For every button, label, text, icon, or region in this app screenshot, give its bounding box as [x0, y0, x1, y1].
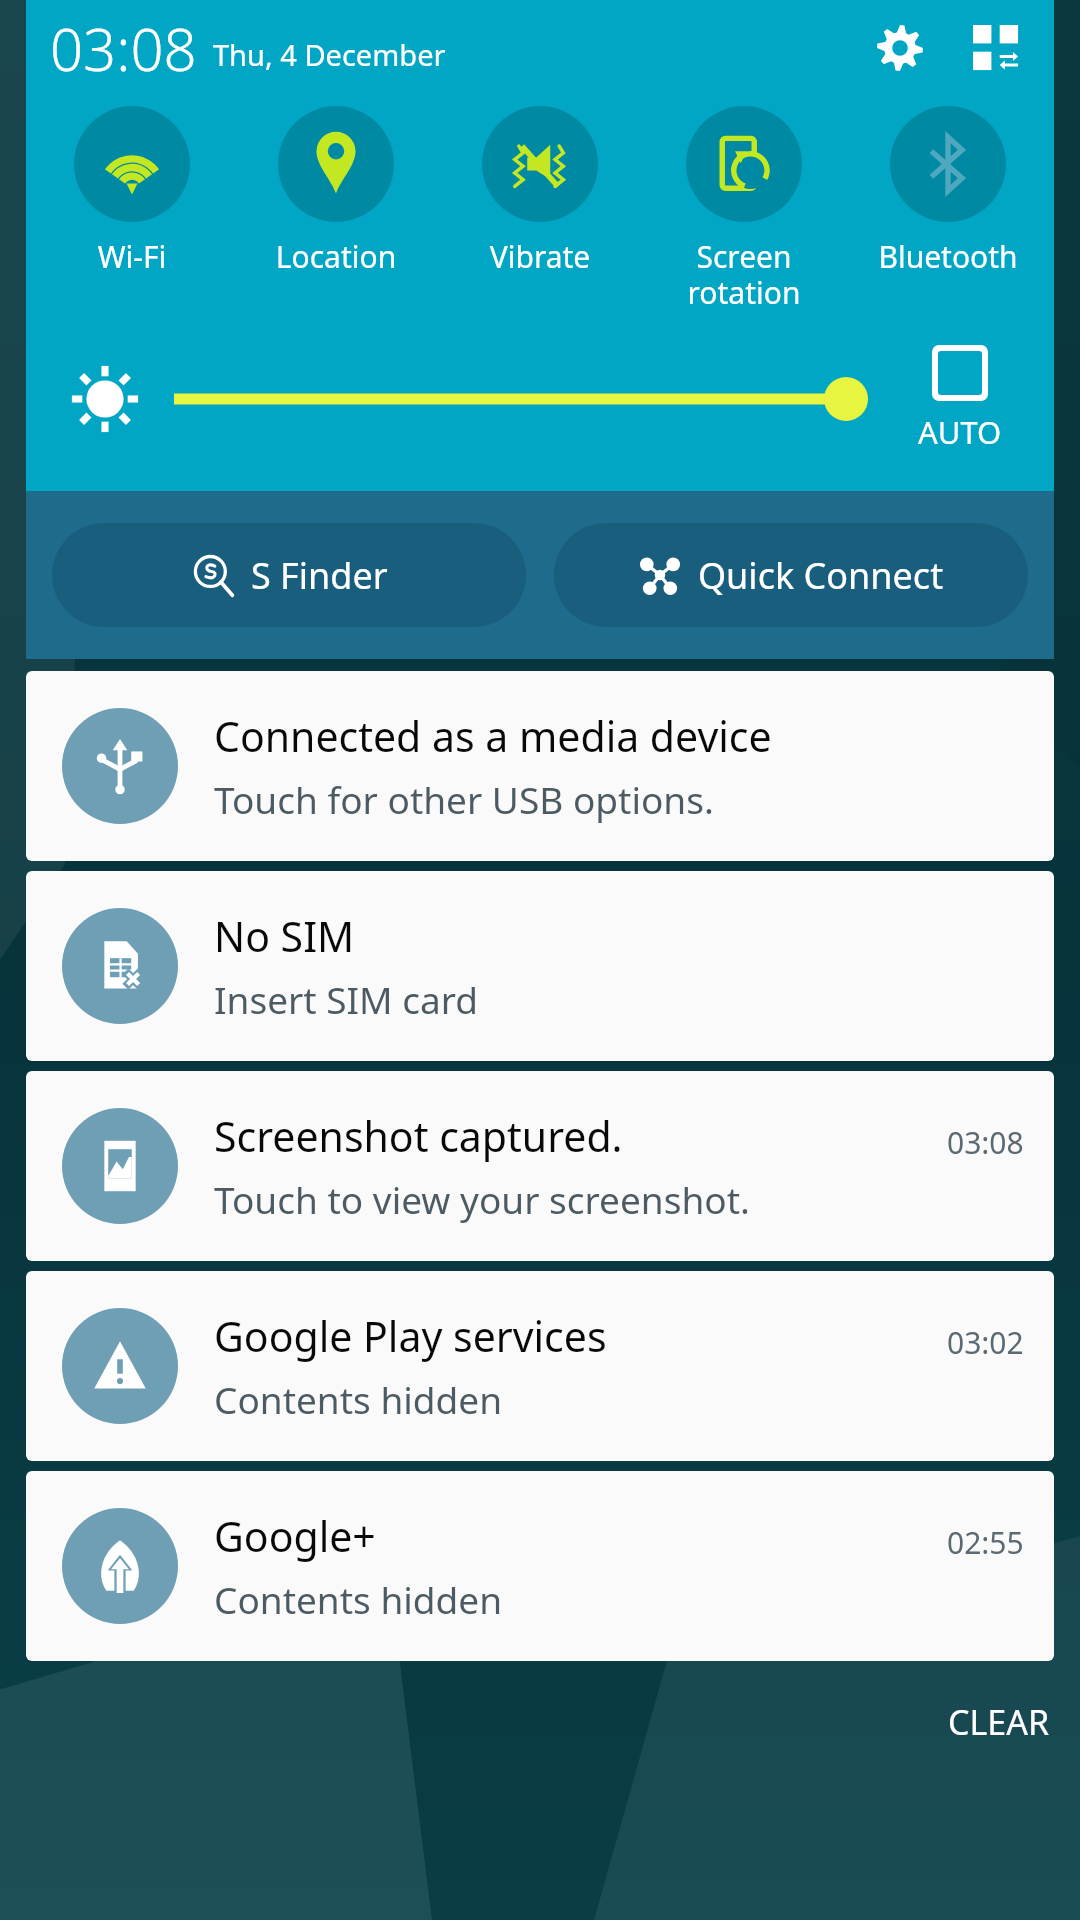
button[interactable]: Connected as a media device [26, 671, 1054, 861]
button[interactable]: No SIM [26, 871, 1054, 1061]
button[interactable]: Screen rotation [642, 102, 846, 317]
staticText: Thu, 4 December [213, 35, 446, 74]
staticText: Bluetooth [846, 236, 1050, 277]
staticText: Google Play services [214, 1308, 607, 1364]
staticText: 03:08 [947, 1122, 1024, 1163]
button[interactable]: Screenshot captured. [26, 1071, 1054, 1261]
button[interactable]: Quick Connect [554, 523, 1028, 627]
button[interactable]: CLEAR [918, 1689, 1080, 1755]
button[interactable]: Bluetooth [846, 102, 1050, 281]
button[interactable]: Edit quick settings [960, 12, 1032, 84]
staticText: Contents hidden [214, 1374, 503, 1424]
staticText: 03:08 [50, 9, 197, 88]
button[interactable] [174, 364, 864, 434]
staticText: Quick Connect [698, 551, 944, 600]
staticText: S Finder [251, 551, 388, 600]
button[interactable]: S Finder [52, 523, 526, 627]
staticText: Connected as a media device [214, 708, 772, 764]
button[interactable]: AUTO [890, 345, 1030, 453]
button[interactable]: Google Play services [26, 1271, 1054, 1461]
button[interactable]: Wi-Fi [30, 102, 234, 281]
staticText: Touch for other USB options. [214, 774, 714, 824]
staticText: Vibrate [438, 236, 642, 277]
button[interactable]: Google+ [26, 1471, 1054, 1661]
staticText: Screenshot captured. [214, 1108, 623, 1164]
staticText: No SIM [214, 908, 355, 964]
staticText: Contents hidden [214, 1574, 503, 1624]
staticText: Google+ [214, 1508, 376, 1564]
staticText: Insert SIM card [214, 974, 479, 1024]
staticText: CLEAR [948, 1699, 1050, 1745]
staticText: 03:02 [947, 1322, 1024, 1363]
staticText: Screen rotation [642, 236, 846, 313]
staticText: AUTO [918, 411, 1002, 453]
staticText: Location [234, 236, 438, 277]
button[interactable]: Settings [864, 12, 936, 84]
staticText: 02:55 [947, 1522, 1024, 1563]
button[interactable]: Location [234, 102, 438, 281]
staticText: Touch to view your screenshot. [214, 1174, 750, 1224]
button[interactable]: Vibrate [438, 102, 642, 281]
button[interactable]: Brightness [66, 360, 144, 438]
staticText: Wi-Fi [30, 236, 234, 277]
